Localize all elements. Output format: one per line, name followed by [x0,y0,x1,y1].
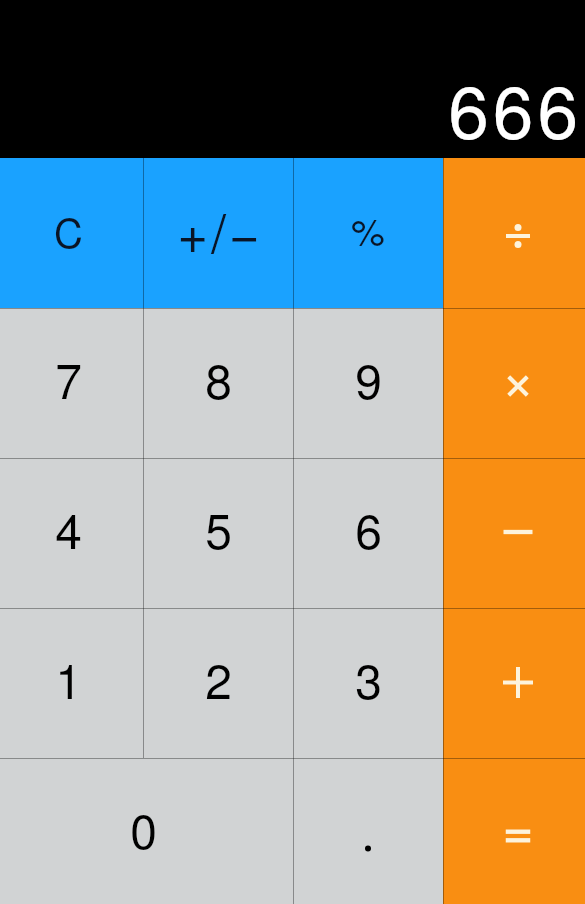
staticText: 8 [205,344,232,413]
button[interactable]: 5 [143,458,293,608]
button[interactable]: Decimal point [293,758,443,904]
button[interactable]: Divide [443,158,585,308]
button[interactable]: Add [443,608,585,758]
button[interactable]: 3 [293,608,443,758]
staticText: 2 [205,644,232,713]
button[interactable]: 4 [0,458,143,608]
button[interactable]: Subtract [443,458,585,608]
button[interactable]: 0 [0,758,293,904]
button[interactable]: 9 [293,308,443,458]
staticText: 1 [55,644,82,713]
staticText: C [54,202,83,259]
staticText: % [351,202,385,256]
staticText: 3 [355,644,382,713]
button[interactable]: Equals [443,758,585,904]
button[interactable]: 1 [0,608,143,758]
staticText: 5 [205,494,232,563]
staticText: 4 [55,494,82,563]
button[interactable]: % [293,158,443,308]
button[interactable]: 6 [293,458,443,608]
button[interactable]: C [0,158,143,308]
button[interactable]: Multiply [443,308,585,458]
button[interactable]: +/− [143,158,293,308]
staticText: 666 [448,55,582,160]
button[interactable]: 8 [143,308,293,458]
staticText: +/− [177,192,263,268]
staticText: 9 [355,344,382,413]
staticText: 6 [355,494,382,563]
staticText: 7 [55,344,82,413]
button[interactable]: 7 [0,308,143,458]
button[interactable]: 2 [143,608,293,758]
staticText: 0 [130,794,157,863]
